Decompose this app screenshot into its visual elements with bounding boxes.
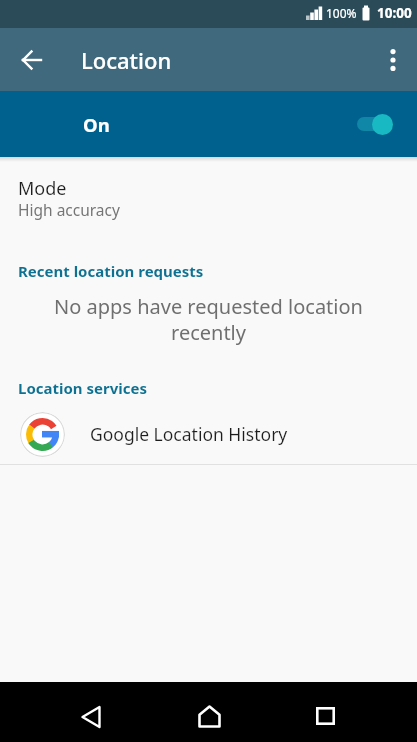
button[interactable]: On xyxy=(0,91,417,157)
button[interactable] xyxy=(301,688,349,736)
staticText: 10:00 xyxy=(377,4,412,22)
button[interactable]: Google Location History xyxy=(0,405,417,463)
staticText: No apps have requested location recently xyxy=(0,293,417,346)
staticText: Mode xyxy=(18,176,67,201)
staticText: Location xyxy=(81,45,172,75)
staticText: Google Location History xyxy=(90,422,288,446)
staticText: On xyxy=(83,112,110,137)
button[interactable] xyxy=(68,688,116,736)
button[interactable] xyxy=(16,44,48,76)
staticText: Recent location requests xyxy=(18,261,204,281)
staticText: Location services xyxy=(18,378,147,398)
button[interactable] xyxy=(185,688,233,736)
button[interactable] xyxy=(379,46,407,74)
staticText: High accuracy xyxy=(18,199,120,220)
staticText: 100% xyxy=(326,5,357,21)
